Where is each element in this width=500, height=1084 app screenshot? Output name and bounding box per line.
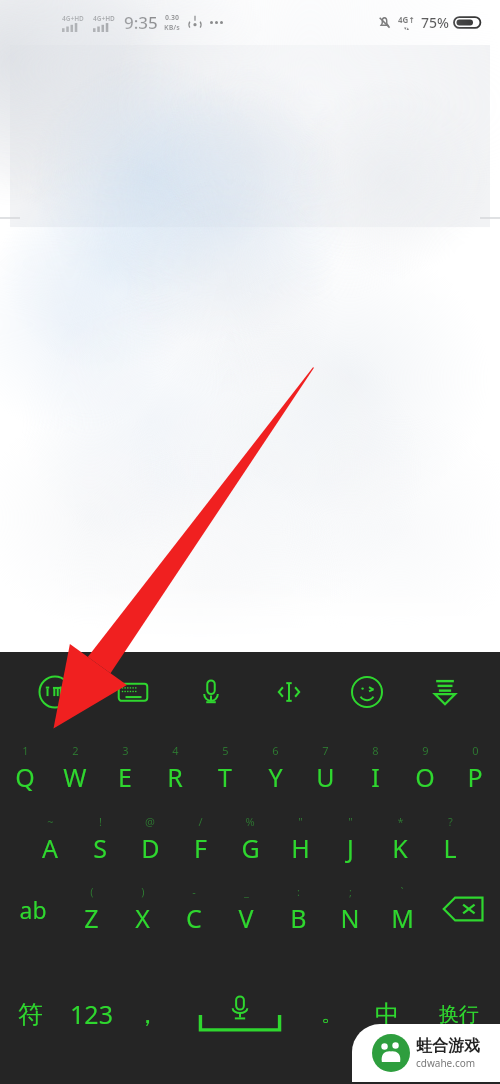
button[interactable]: ab [0,874,66,944]
staticText: : [297,884,300,899]
staticText: " [298,814,303,829]
staticText: 2 [72,743,79,758]
staticText: 蛙合游戏 [416,1036,480,1056]
button[interactable]: 2 [50,732,100,804]
staticText: / [198,814,203,829]
staticText: L [443,831,457,865]
staticText: Y [268,760,283,794]
button[interactable]: ( [66,874,117,944]
staticText: R [167,760,183,794]
button[interactable]: Input method [32,669,78,715]
staticText: X [135,901,150,935]
staticText: S [93,831,107,865]
staticText: 。 [321,1000,343,1028]
staticText: F [194,831,207,865]
button[interactable]: ` [376,874,428,944]
button[interactable]: ~ [25,804,75,874]
staticText: B [290,901,307,935]
button[interactable]: " [275,804,325,874]
staticText: 4G↑ [398,14,416,25]
button[interactable]: " [325,804,375,874]
button[interactable]: Backspace [428,874,500,944]
button[interactable]: 5 [200,732,250,804]
staticText: ▾▴ [404,25,410,31]
staticText: 8 [372,743,379,758]
staticText: KB/s [164,23,180,33]
button[interactable]: Move cursor [266,669,312,715]
button[interactable]: Keyboard layout [110,669,156,715]
staticText: P [467,760,483,794]
staticText: I [371,760,380,794]
staticText: * [397,814,404,829]
staticText: 9:35 [124,11,158,34]
button[interactable]: Emoji [344,669,390,715]
staticText: M [391,901,414,935]
staticText: ! [99,814,102,829]
staticText: _ [244,884,249,899]
button[interactable]: 3 [100,732,150,804]
staticText: 4 [172,743,179,758]
button[interactable]: 6 [250,732,300,804]
button[interactable]: 9 [400,732,450,804]
staticText: % [245,814,255,829]
staticText: E [118,760,132,794]
button[interactable]: 。 [306,944,357,1084]
button[interactable]: 0 [450,732,500,804]
staticText: ， [135,999,160,1030]
button[interactable]: Space [173,944,306,1084]
button[interactable]: 中 [357,944,418,1084]
button[interactable]: 8 [350,732,400,804]
staticText: ? [448,814,453,829]
button[interactable]: 7 [300,732,350,804]
button[interactable]: : [272,874,324,944]
button[interactable]: Hide keyboard [422,669,468,715]
button[interactable]: / [175,804,225,874]
staticText: 75% [421,13,449,32]
staticText: 6 [272,743,279,758]
button[interactable]: 1 [0,732,50,804]
button[interactable]: * [375,804,425,874]
button[interactable]: - [168,874,220,944]
staticText: 4G+HD [62,14,84,23]
button[interactable]: ; [324,874,376,944]
button[interactable]: ? [425,804,475,874]
staticText: 123 [70,997,113,1031]
staticText: C [186,901,202,935]
staticText: W [63,760,87,794]
staticText: - [192,884,196,899]
staticText: @ [145,814,155,829]
button[interactable]: @ [125,804,175,874]
staticText: N [340,901,360,935]
staticText: U [316,760,335,794]
button[interactable]: % [225,804,275,874]
button[interactable]: ) [117,874,168,944]
button[interactable]: Voice input [188,669,234,715]
button[interactable]: 换行 [418,944,500,1084]
button[interactable]: ， [122,944,173,1084]
staticText: ab [19,894,47,925]
staticText: 4G+HD [93,14,115,23]
staticText: G [241,831,260,865]
button[interactable]: 4 [150,732,200,804]
staticText: ) [141,884,145,899]
button[interactable]: 123 [61,944,122,1084]
button[interactable]: 符 [0,944,61,1084]
staticText: Z [84,901,99,935]
button[interactable]: _ [220,874,272,944]
staticText: D [141,831,160,865]
staticText: ~ [47,814,54,829]
button[interactable]: ! [75,804,125,874]
staticText: 中 [375,999,400,1030]
staticText: ; [349,884,352,899]
staticText: Q [15,760,35,794]
staticText: 换行 [439,1002,479,1027]
staticText: 7 [322,743,329,758]
staticText: 3 [122,743,129,758]
staticText: 0 [472,743,479,758]
staticText: ( [90,884,94,899]
staticText: 1 [22,743,29,758]
staticText: J [347,831,354,865]
staticText: T [218,760,232,794]
staticText: 0.30 [165,13,179,23]
staticText: H [291,831,310,865]
